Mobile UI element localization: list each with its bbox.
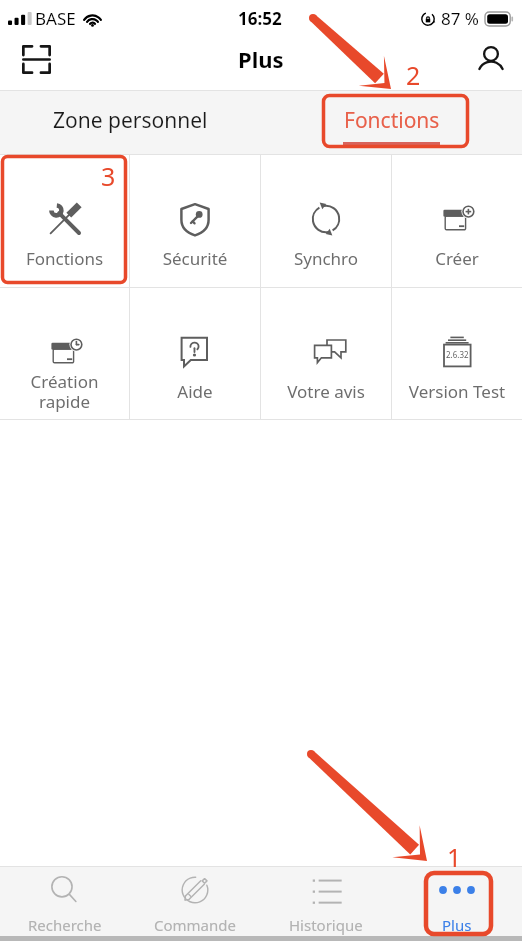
staticText: Aide (130, 380, 260, 403)
staticText: Recherche (28, 915, 102, 935)
staticText: Plus (238, 44, 284, 74)
staticText: Créer (392, 247, 522, 270)
button[interactable]: Zone personnel (0, 91, 261, 154)
staticText: Sécurité (130, 247, 260, 270)
button[interactable]: Création rapide (0, 288, 129, 419)
staticText: 3 (101, 159, 116, 193)
button[interactable]: Plus (391, 867, 522, 936)
button[interactable]: Synchro (261, 155, 391, 287)
button[interactable]: Fonctions (261, 91, 522, 154)
staticText: BASE (35, 7, 76, 30)
button[interactable]: Recherche (0, 867, 130, 936)
staticText: Fonctions (344, 106, 440, 135)
button[interactable]: Commande (130, 867, 260, 936)
staticText: Version Test (392, 380, 522, 403)
button[interactable]: 2.6.32 (392, 288, 522, 419)
staticText: Votre avis (261, 380, 391, 403)
button[interactable]: Compte (466, 35, 516, 85)
button[interactable]: Votre avis (261, 288, 391, 419)
button[interactable]: Sécurité (130, 155, 260, 287)
staticText: Création rapide (0, 370, 129, 413)
button[interactable]: Créer (392, 155, 522, 287)
staticText: Commande (154, 915, 236, 935)
button[interactable]: Aide (130, 288, 260, 419)
staticText: Historique (289, 915, 363, 935)
staticText: Plus (442, 915, 472, 935)
button[interactable]: Historique (260, 867, 391, 936)
button[interactable]: Scanner (11, 34, 61, 84)
staticText: 1 (447, 840, 462, 874)
button[interactable]: Fonctions (0, 155, 129, 287)
staticText: 2.6.32 (446, 349, 469, 360)
staticText: 2 (406, 58, 421, 92)
staticText: 16:52 (238, 7, 282, 30)
staticText: 87 % (441, 7, 479, 30)
staticText: Fonctions (0, 247, 129, 270)
staticText: Synchro (261, 247, 391, 270)
staticText: Zone personnel (53, 106, 208, 135)
